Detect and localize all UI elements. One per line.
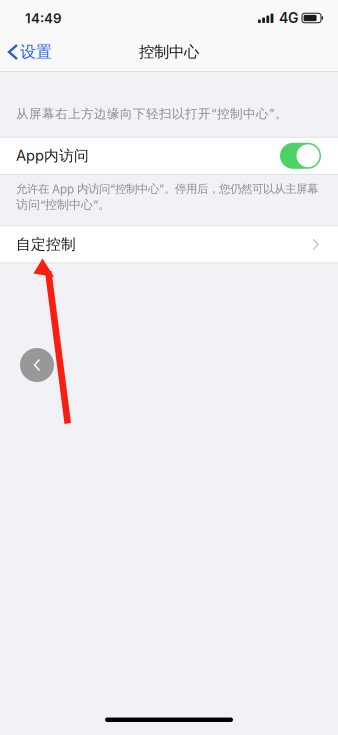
- staticText: 设置: [20, 42, 52, 62]
- button[interactable]: 自定控制: [0, 225, 338, 263]
- staticText: 控制中心: [139, 42, 199, 62]
- staticText: 访问“控制中心”。: [16, 197, 110, 212]
- staticText: App内访问: [16, 146, 89, 165]
- staticText: 14:49: [25, 10, 62, 26]
- button[interactable]: Back: [20, 348, 54, 382]
- staticText: 从屏幕右上方边缘向下轻扫以打开“控制中心”。: [16, 106, 288, 122]
- staticText: 允许在 App 内访问“控制中心”。停用后，您仍然可以从主屏幕: [16, 182, 318, 196]
- staticText: 4G: [279, 9, 298, 26]
- button[interactable]: App内访问: [0, 137, 338, 175]
- button[interactable]: 设置: [0, 35, 60, 69]
- staticText: 自定控制: [16, 235, 76, 254]
